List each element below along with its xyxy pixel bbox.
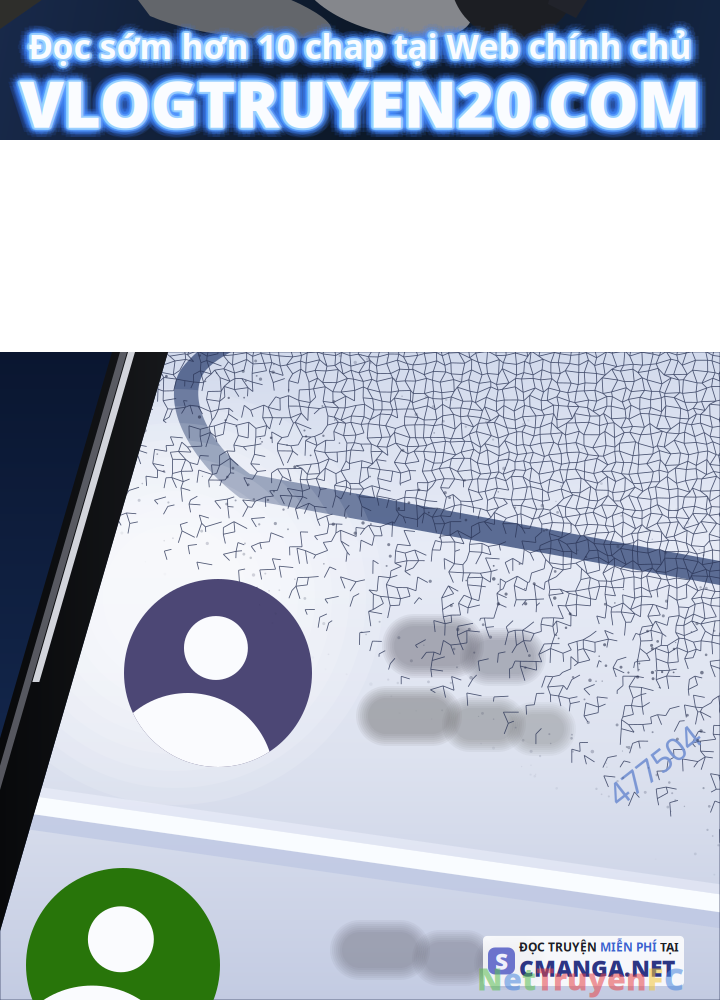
staticText: Đọc sớm hơn 10 chap tại Web chính chủ: [27, 25, 690, 70]
staticText: VLOGTRUYEN20.COM: [22, 61, 703, 146]
staticText: Đọc sớm hơn 10 chap tại Web chính chủ: [28, 24, 691, 68]
staticText: VLOGTRUYEN20.COM: [22, 60, 703, 145]
staticText: Đọc sớm hơn 10 chap tại Web chính chủ: [31, 21, 694, 65]
staticText: Đọc sớm hơn 10 chap tại Web chính chủ: [19, 28, 682, 72]
staticText: VLOGTRUYEN20.COM: [15, 59, 696, 144]
staticText: F: [647, 958, 664, 999]
staticText: Đọc sớm hơn 10 chap tại Web chính chủ: [19, 20, 682, 64]
staticText: VLOGTRUYEN20.COM: [15, 65, 696, 150]
staticText: VLOGTRUYEN20.COM: [20, 58, 701, 143]
staticText: VLOGTRUYEN20.COM: [18, 54, 699, 139]
staticText: Đọc sớm hơn 10 chap tại Web chính chủ: [35, 21, 698, 65]
staticText: Đọc sớm hơn 10 chap tại Web chính chủ: [29, 28, 692, 72]
staticText: e: [503, 958, 522, 999]
staticText: VLOGTRUYEN20.COM: [24, 62, 705, 147]
staticText: Đọc sớm hơn 10 chap tại Web chính chủ: [30, 25, 693, 70]
staticText: Đọc sớm hơn 10 chap tại Web chính chủ: [27, 20, 690, 64]
staticText: VLOGTRUYEN20.COM: [13, 63, 694, 148]
staticText: VLOGTRUYEN20.COM: [17, 60, 698, 145]
staticText: Đọc sớm hơn 10 chap tại Web chính chủ: [29, 26, 692, 70]
staticText: VLOGTRUYEN20.COM: [22, 57, 703, 142]
staticText: Đọc sớm hơn 10 chap tại Web chính chủ: [26, 27, 689, 71]
staticText: VLOGTRUYEN20.COM: [21, 62, 702, 147]
staticText: VLOGTRUYEN20.COM: [22, 51, 703, 136]
staticText: VLOGTRUYEN20.COM: [24, 59, 705, 144]
staticText: VLOGTRUYEN20.COM: [29, 56, 710, 141]
staticText: S: [495, 946, 508, 976]
staticText: Đọc sớm hơn 10 chap tại Web chính chủ: [30, 18, 693, 62]
staticText: C: [664, 958, 684, 999]
staticText: VLOGTRUYEN20.COM: [21, 54, 702, 139]
staticText: Đọc sớm hơn 10 chap tại Web chính chủ: [24, 22, 687, 66]
staticText: Đọc sớm hơn 10 chap tại Web chính chủ: [21, 24, 684, 68]
staticText: Đọc sớm hơn 10 chap tại Web chính chủ: [31, 23, 694, 67]
staticText: Đọc sớm hơn 10 chap tại Web chính chủ: [39, 24, 702, 68]
staticText: VLOGTRUYEN20.COM: [26, 53, 707, 138]
staticText: VLOGTRUYEN20.COM: [27, 60, 708, 145]
staticText: VLOGTRUYEN20.COM: [10, 56, 691, 141]
staticText: Đọc sớm hơn 10 chap tại Web chính chủ: [33, 25, 696, 70]
staticText: Đọc sớm hơn 10 chap tại Web chính chủ: [24, 19, 687, 63]
staticText: VLOGTRUYEN20.COM: [17, 57, 698, 142]
staticText: VLOGTRUYEN20.COM: [24, 65, 705, 150]
staticText: Đọc sớm hơn 10 chap tại Web chính chủ: [30, 30, 693, 74]
staticText: VLOGTRUYEN20.COM: [15, 62, 696, 147]
staticText: Đọc sớm hơn 10 chap tại Web chính chủ: [31, 25, 694, 69]
staticText: VLOGTRUYEN20.COM: [20, 64, 701, 149]
staticText: VLOGTRUYEN20.COM: [10, 65, 691, 150]
staticText: Đọc sớm hơn 10 chap tại Web chính chủ: [27, 28, 690, 72]
staticText: VLOGTRUYEN20.COM: [15, 60, 696, 145]
staticText: Đọc sớm hơn 10 chap tại Web chính chủ: [31, 15, 694, 59]
staticText: VLOGTRUYEN20.COM: [17, 60, 698, 145]
staticText: VLOGTRUYEN20.COM: [17, 63, 698, 148]
staticText: ĐỌC TRUYỆN: [519, 939, 597, 955]
staticText: Đọc sớm hơn 10 chap tại Web chính chủ: [26, 33, 689, 77]
staticText: Đọc sớm hơn 10 chap tại Web chính chủ: [26, 23, 689, 67]
staticText: Đọc sớm hơn 10 chap tại Web chính chủ: [27, 18, 690, 62]
staticText: t: [522, 958, 536, 999]
staticText: VLOGTRUYEN20.COM: [26, 58, 707, 143]
staticText: Đọc sớm hơn 10 chap tại Web chính chủ: [35, 27, 698, 71]
staticText: Đọc sớm hơn 10 chap tại Web chính chủ: [33, 24, 696, 68]
staticText: VLOGTRUYEN20.COM: [18, 64, 699, 149]
staticText: Đọc sớm hơn 10 chap tại Web chính chủ: [24, 24, 687, 68]
staticText: Đọc sớm hơn 10 chap tại Web chính chủ: [17, 24, 680, 68]
staticText: VLOGTRUYEN20.COM: [18, 59, 699, 144]
staticText: TẠI: [660, 939, 679, 955]
staticText: Đọc sớm hơn 10 chap tại Web chính chủ: [33, 19, 696, 63]
staticText: Đọc sớm hơn 10 chap tại Web chính chủ: [26, 21, 689, 65]
staticText: Đọc sớm hơn 10 chap tại Web chính chủ: [35, 17, 698, 61]
staticText: Đọc sớm hơn 10 chap tại Web chính chủ: [22, 17, 685, 61]
staticText: Đọc sớm hơn 10 chap tại Web chính chủ: [29, 20, 692, 64]
staticText: Đọc sớm hơn 10 chap tại Web chính chủ: [35, 31, 698, 75]
staticText: VLOGTRUYEN20.COM: [30, 60, 711, 145]
staticText: Đọc sớm hơn 10 chap tại Web chính chủ: [26, 24, 689, 68]
staticText: Đọc sớm hơn 10 chap tại Web chính chủ: [24, 25, 687, 70]
staticText: VLOGTRUYEN20.COM: [12, 60, 693, 145]
staticText: MIỄN PHÍ: [600, 939, 657, 955]
staticText: VLOGTRUYEN20.COM: [22, 60, 703, 145]
staticText: CMANGA.NET: [519, 953, 675, 983]
staticText: VLOGTRUYEN20.COM: [19, 60, 700, 145]
staticText: Đọc sớm hơn 10 chap tại Web chính chủ: [29, 22, 692, 66]
staticText: VLOGTRUYEN20.COM: [13, 68, 694, 153]
staticText: VLOGTRUYEN20.COM: [17, 61, 698, 146]
staticText: Đọc sớm hơn 10 chap tại Web chính chủ: [38, 20, 701, 64]
staticText: Đọc sớm hơn 10 chap tại Web chính chủ: [38, 28, 701, 72]
staticText: VLOGTRUYEN20.COM: [8, 60, 689, 145]
staticText: VLOGTRUYEN20.COM: [18, 62, 699, 147]
staticText: Đọc sớm hơn 10 chap tại Web chính chủ: [28, 22, 691, 66]
staticText: VLOGTRUYEN20.COM: [20, 62, 701, 147]
staticText: VLOGTRUYEN20.COM: [18, 67, 699, 152]
staticText: VLOGTRUYEN20.COM: [18, 57, 699, 142]
staticText: VLOGTRUYEN20.COM: [22, 63, 703, 148]
staticText: VLOGTRUYEN20.COM: [19, 62, 700, 147]
staticText: Đọc sớm hơn 10 chap tại Web chính chủ: [27, 22, 690, 67]
staticText: Truyen: [536, 958, 647, 999]
staticText: Đọc sớm hơn 10 chap tại Web chính chủ: [33, 29, 696, 73]
staticText: Đọc sớm hơn 10 chap tại Web chính chủ: [36, 24, 699, 68]
staticText: Đọc sớm hơn 10 chap tại Web chính chủ: [22, 21, 685, 65]
staticText: VLOGTRUYEN20.COM: [26, 63, 707, 148]
staticText: VLOGTRUYEN20.COM: [13, 58, 694, 143]
staticText: Đọc sớm hơn 10 chap tại Web chính chủ: [31, 33, 694, 77]
